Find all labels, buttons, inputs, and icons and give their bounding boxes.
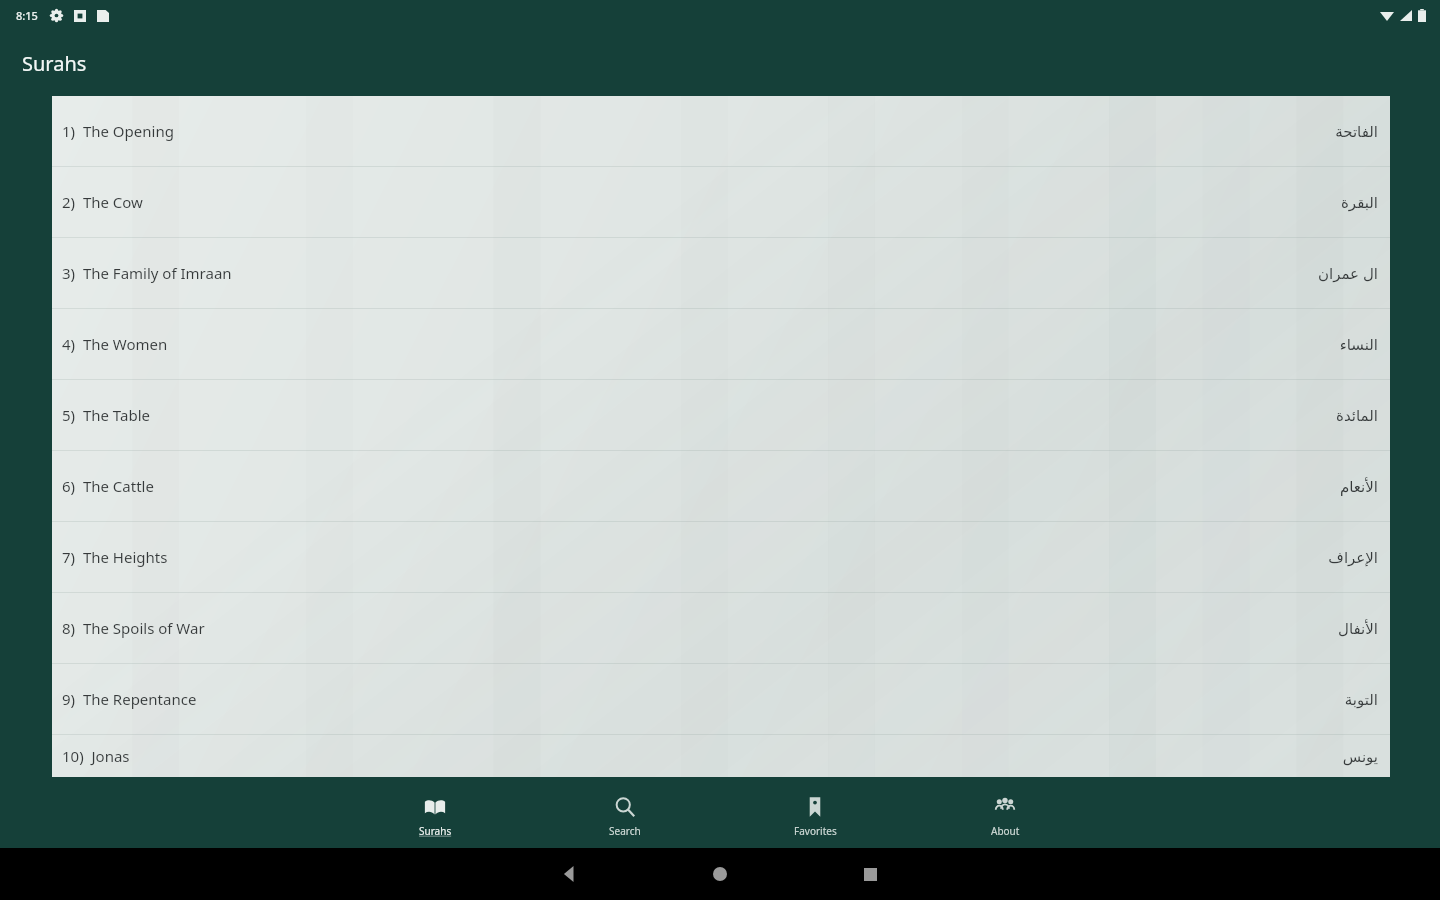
button[interactable]: 7) The Heights <box>52 522 1390 592</box>
staticText: Search <box>609 824 641 838</box>
staticText: 9) The Repentance <box>62 689 197 709</box>
staticText: Favorites <box>794 824 837 838</box>
staticText: 6) The Cattle <box>62 476 154 496</box>
button[interactable]: 2) The Cow <box>52 167 1390 237</box>
button[interactable]: 8) The Spoils of War <box>52 593 1390 663</box>
button[interactable]: Surahs <box>340 786 530 848</box>
staticText: 2) The Cow <box>62 192 143 212</box>
staticText: 1) The Opening <box>62 121 174 141</box>
staticText: المائدة <box>1336 407 1378 424</box>
staticText: 10) Jonas <box>62 746 130 766</box>
staticText: التوبة <box>1344 691 1378 708</box>
staticText: ال عمران <box>1317 263 1378 283</box>
button[interactable]: Home <box>645 848 795 900</box>
staticText: About <box>991 824 1020 838</box>
button[interactable]: 9) The Repentance <box>52 664 1390 734</box>
staticText: Surahs <box>419 824 452 838</box>
staticText: 7) The Heights <box>62 547 168 567</box>
staticText: الأنفال <box>1338 620 1378 637</box>
staticText: 4) The Women <box>62 334 168 354</box>
button[interactable]: 4) The Women <box>52 309 1390 379</box>
staticText: البقرة <box>1341 194 1378 211</box>
button[interactable]: 5) The Table <box>52 380 1390 450</box>
staticText: 8) The Spoils of War <box>62 618 205 638</box>
staticText: Surahs <box>22 50 87 77</box>
staticText: يونس <box>1342 748 1378 765</box>
button[interactable]: Search <box>530 786 720 848</box>
button[interactable]: About <box>910 786 1100 848</box>
button[interactable]: Back <box>495 848 645 900</box>
button[interactable]: Recents <box>795 848 945 900</box>
staticText: النساء <box>1339 336 1378 353</box>
button[interactable]: 10) Jonas <box>52 735 1390 777</box>
button[interactable]: 6) The Cattle <box>52 451 1390 521</box>
staticText: 8:15 <box>16 8 38 23</box>
button[interactable]: 1) The Opening <box>52 96 1390 166</box>
staticText: الأنعام <box>1340 478 1378 495</box>
staticText: الإعراف <box>1328 549 1378 566</box>
button[interactable]: Favorites <box>720 786 910 848</box>
staticText: 3) The Family of Imraan <box>62 263 232 283</box>
staticText: 5) The Table <box>62 405 150 425</box>
staticText: الفاتحة <box>1335 123 1378 140</box>
button[interactable]: 3) The Family of Imraan <box>52 238 1390 308</box>
